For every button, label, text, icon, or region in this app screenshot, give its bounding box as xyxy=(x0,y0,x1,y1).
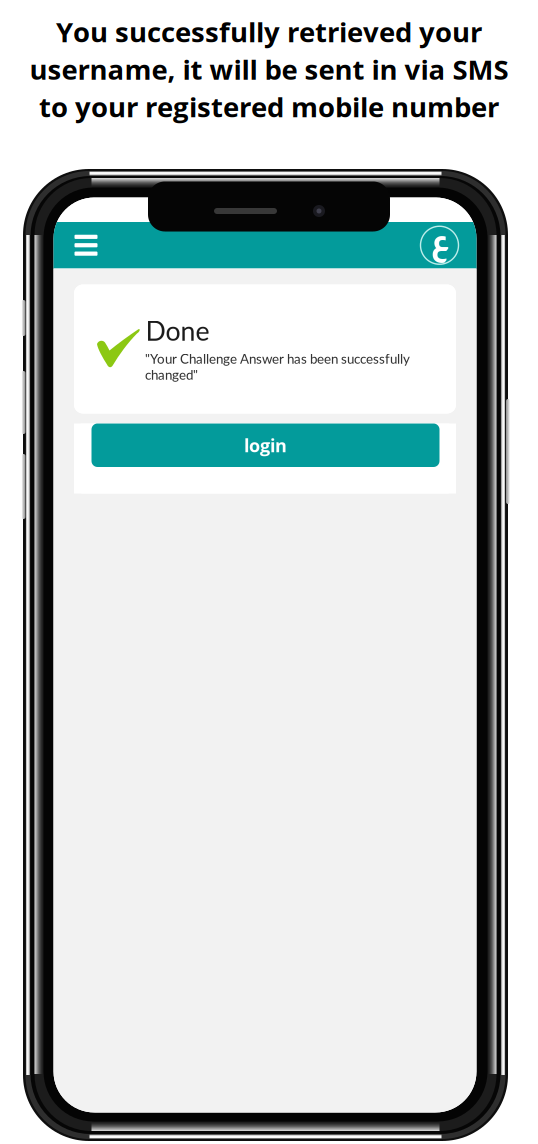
staticText: You successfully retrieved your xyxy=(56,13,482,50)
staticText: ع xyxy=(430,223,448,257)
staticText: "Your Challenge Answer has been successf… xyxy=(145,350,410,382)
button[interactable]: login xyxy=(91,423,439,467)
staticText: Done xyxy=(145,314,209,346)
staticText: login xyxy=(244,433,287,457)
staticText: to your registered mobile number xyxy=(39,88,499,125)
button[interactable]: Switch language xyxy=(420,226,458,264)
button[interactable]: Menu xyxy=(63,222,108,268)
staticText: username, it will be sent in via SMS xyxy=(29,50,508,88)
